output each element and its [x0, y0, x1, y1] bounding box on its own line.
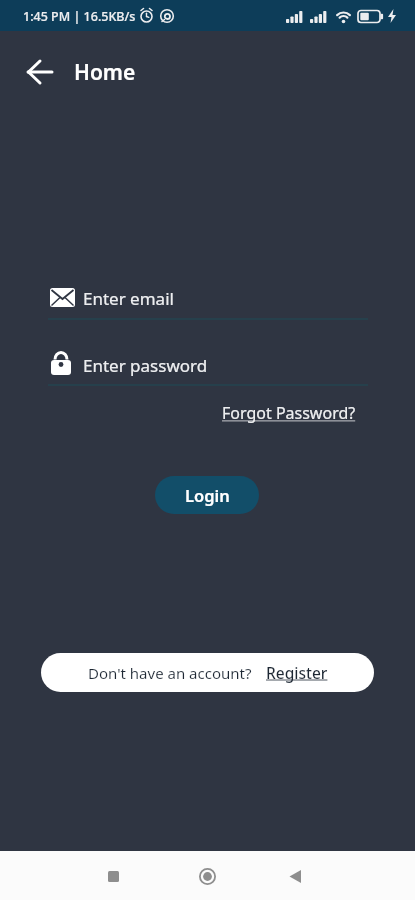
staticText: Register — [266, 662, 328, 683]
button[interactable]: Enter email — [48, 282, 368, 320]
button[interactable] — [275, 856, 315, 896]
button[interactable]: Don't have an account? — [41, 653, 374, 692]
button[interactable]: Login — [155, 476, 259, 514]
button[interactable]: Enter password — [48, 348, 368, 386]
button[interactable]: Forgot Password? — [218, 400, 360, 426]
staticText: Enter email — [83, 287, 174, 310]
button[interactable] — [187, 856, 227, 896]
button[interactable] — [93, 856, 133, 896]
staticText: Login — [185, 484, 230, 506]
staticText: 1:45 PM | 16.5KB/s — [23, 8, 136, 25]
staticText: Home — [74, 58, 136, 87]
staticText: Forgot Password? — [222, 402, 356, 424]
staticText: Enter password — [83, 354, 208, 377]
button[interactable] — [12, 44, 68, 100]
staticText: Don't have an account? — [88, 663, 252, 683]
